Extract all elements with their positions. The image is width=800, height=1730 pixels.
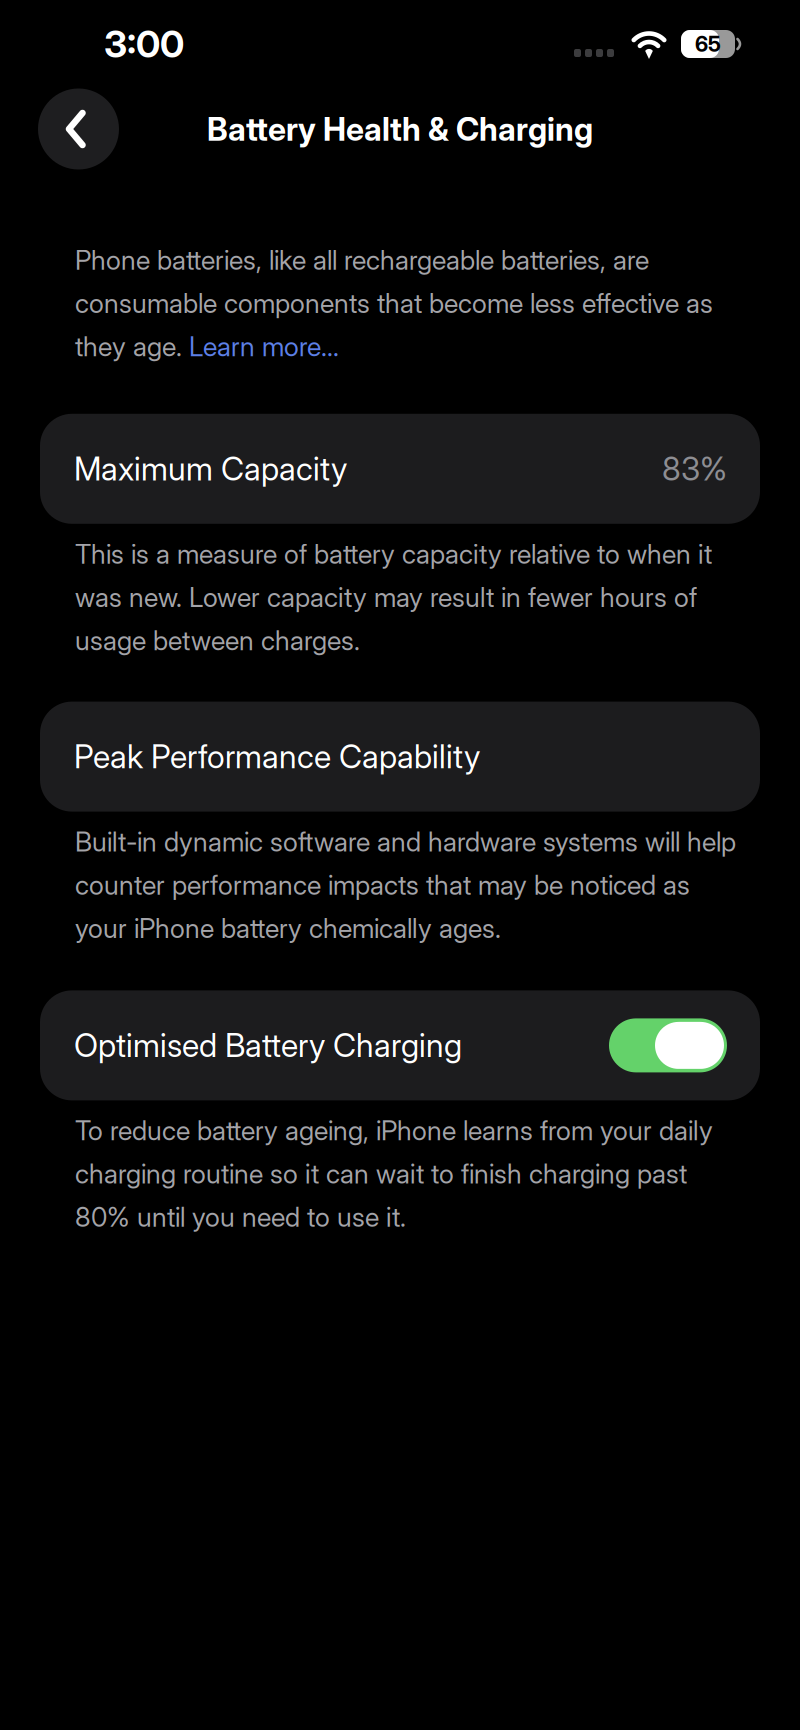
staticText: Battery Health & Charging [207, 110, 593, 148]
staticText: Phone batteries, like all rechargeable b… [75, 244, 713, 363]
staticText: 83% [662, 449, 727, 488]
staticText: 65 [695, 31, 721, 57]
staticText: To reduce battery ageing, iPhone learns … [75, 1114, 713, 1233]
staticText: Built-in dynamic software and hardware s… [75, 826, 736, 944]
staticText: Peak Performance Capability [74, 737, 480, 776]
staticText: 3:00 [104, 21, 184, 67]
button[interactable]: Back [38, 88, 119, 169]
button[interactable]: Optimised Battery Charging [40, 990, 760, 1100]
staticText: Optimised Battery Charging [74, 1026, 462, 1065]
staticText: This is a measure of battery capacity re… [75, 538, 712, 657]
staticText: Maximum Capacity [74, 449, 347, 488]
button[interactable]: Maximum Capacity [40, 414, 760, 524]
button[interactable]: Peak Performance Capability [40, 702, 760, 812]
